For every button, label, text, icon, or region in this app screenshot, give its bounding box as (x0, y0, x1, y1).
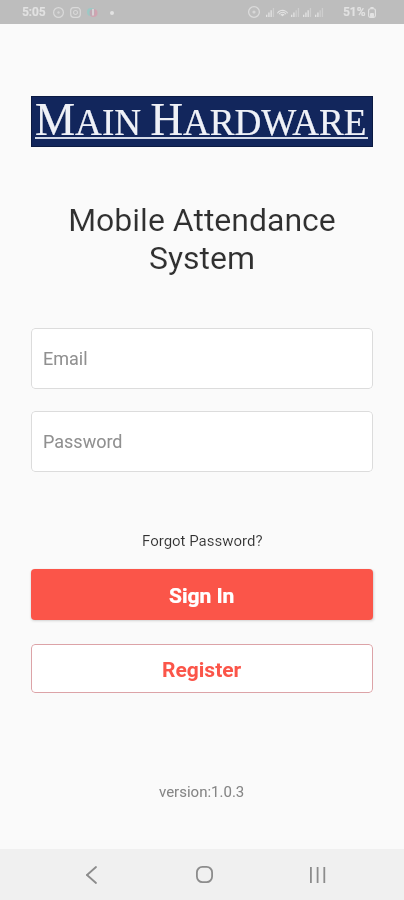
staticText: Register (162, 658, 242, 683)
staticText: Mobile Attendance System (68, 201, 336, 277)
staticText: Forgot Password? (142, 532, 263, 550)
button[interactable]: Forgot Password? (132, 529, 273, 553)
button[interactable]: Email (31, 328, 373, 389)
staticText: 51% (343, 5, 366, 19)
staticText: Sign In (169, 584, 235, 609)
staticText: MAIN HARDWARE (35, 96, 367, 145)
staticText: version:1.0.3 (159, 783, 245, 801)
button[interactable]: Recent apps (260, 849, 374, 900)
button[interactable]: Back (34, 849, 148, 900)
button[interactable]: Sign In (31, 569, 373, 620)
staticText: Password (43, 431, 123, 452)
button[interactable]: Home (147, 849, 261, 900)
staticText: 5:05 (22, 5, 46, 19)
button[interactable]: Register (31, 644, 373, 693)
staticText: Email (43, 348, 88, 369)
button[interactable]: Password (31, 411, 373, 472)
